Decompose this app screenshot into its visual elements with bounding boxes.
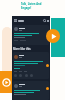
button[interactable] xyxy=(13,81,49,100)
button[interactable] xyxy=(13,52,49,79)
button[interactable]: Play xyxy=(46,29,60,43)
staticText: Talk, Listen And xyxy=(21,2,42,6)
button[interactable]: Menu xyxy=(13,18,18,23)
button[interactable] xyxy=(18,20,24,22)
button[interactable]: More options xyxy=(46,19,49,22)
button[interactable]: Play episode xyxy=(0,71,12,93)
staticText: More like this xyxy=(13,47,31,51)
staticText: Engage! xyxy=(21,6,32,10)
button[interactable]: Search xyxy=(43,19,46,22)
button[interactable] xyxy=(13,25,49,45)
